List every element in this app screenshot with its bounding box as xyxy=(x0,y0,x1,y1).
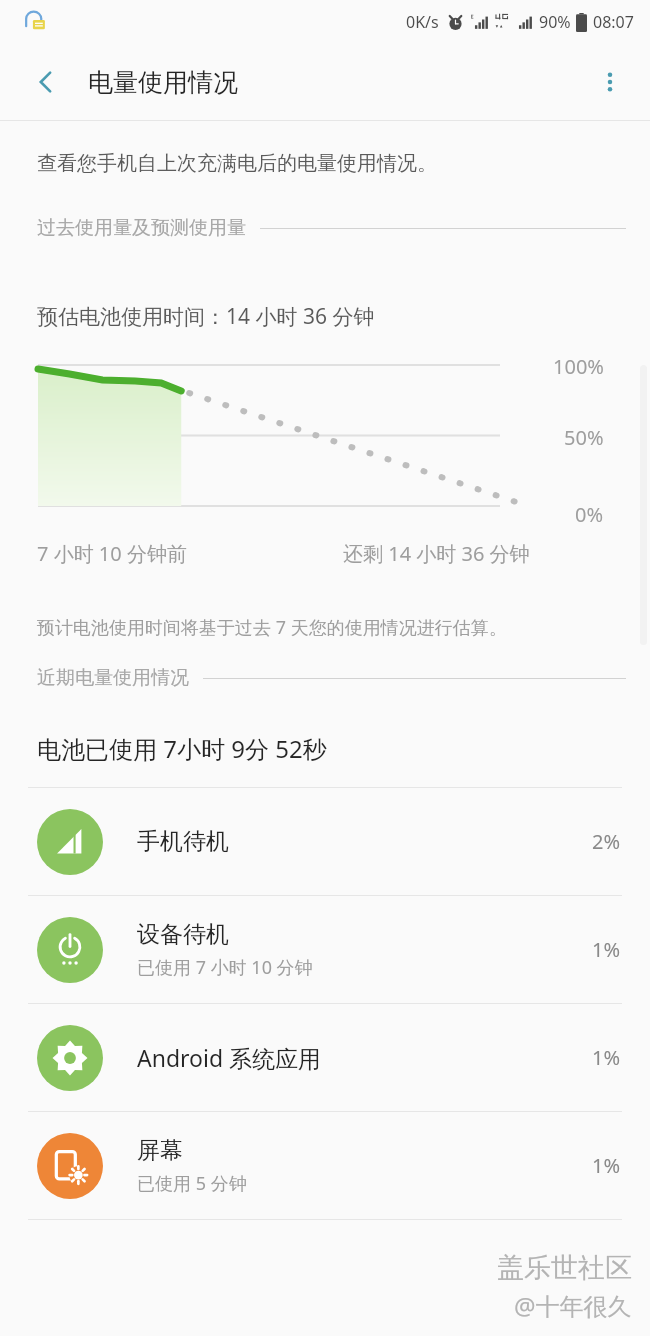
staticText: 屏幕 xyxy=(137,1136,183,1165)
staticText: 08:07 xyxy=(593,11,634,33)
button[interactable]: Android 系统应用 xyxy=(0,1004,650,1111)
staticText: Android 系统应用 xyxy=(137,1042,322,1073)
button[interactable]: More options xyxy=(582,54,638,110)
staticText: 已使用 7 小时 10 分钟 xyxy=(137,955,313,980)
staticText: 50% xyxy=(564,424,604,451)
staticText: 预估电池使用时间：14 小时 36 分钟 xyxy=(37,302,375,331)
button[interactable]: 屏幕 xyxy=(0,1112,650,1219)
staticText: 预计电池使用时间将基于过去 7 天您的使用情况进行估算。 xyxy=(37,615,507,640)
staticText: @十年很久 xyxy=(514,1289,632,1322)
staticText: 电量使用情况 xyxy=(88,67,238,98)
staticText: 7 小时 10 分钟前 xyxy=(37,540,187,567)
staticText: 2% xyxy=(591,828,620,855)
staticText: 0% xyxy=(575,501,604,528)
staticText: 1% xyxy=(591,1044,620,1071)
staticText: 盖乐世社区 xyxy=(497,1251,632,1285)
button[interactable]: 手机待机 xyxy=(0,788,650,895)
staticText: 近期电量使用情况 xyxy=(37,666,189,690)
staticText: 手机待机 xyxy=(137,827,229,856)
staticText: 0K/s xyxy=(406,11,439,33)
button[interactable]: 设备待机 xyxy=(0,896,650,1003)
staticText: 1% xyxy=(591,936,620,963)
button[interactable]: Back xyxy=(18,54,74,110)
staticText: 电池已使用 7小时 9分 52秒 xyxy=(37,732,327,765)
staticText: 还剩 14 小时 36 分钟 xyxy=(343,540,530,567)
staticText: 已使用 5 分钟 xyxy=(137,1171,247,1196)
staticText: 90% xyxy=(539,11,571,33)
staticText: 设备待机 xyxy=(137,920,229,949)
staticText: 1% xyxy=(591,1152,620,1179)
staticText: 查看您手机自上次充满电后的电量使用情况。 xyxy=(37,151,437,176)
staticText: 100% xyxy=(553,353,604,380)
staticText: 过去使用量及预测使用量 xyxy=(37,216,246,240)
